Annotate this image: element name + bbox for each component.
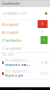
staticText: 1 bbox=[43, 38, 45, 42]
staticText: 3 bbox=[42, 22, 44, 26]
staticText: Coordinator bbox=[2, 2, 20, 5]
button[interactable]: Coordinator bbox=[0, 1, 20, 6]
staticText: Completed bbox=[2, 45, 21, 51]
staticText: Checked in bbox=[2, 37, 21, 43]
button[interactable]: Assigned bbox=[0, 20, 50, 28]
staticText: Assigned bbox=[2, 21, 18, 27]
button[interactable]: user@example.com bbox=[0, 7, 50, 20]
staticText: Your Assigned Job bbox=[5, 59, 30, 62]
staticText: 4:30 bbox=[41, 61, 48, 64]
staticText: 8:15 bbox=[41, 72, 48, 75]
staticText: user@example.com bbox=[2, 12, 26, 15]
button[interactable]: Your Assigned Job bbox=[0, 57, 50, 68]
staticText: Accepted bbox=[2, 29, 18, 35]
button[interactable]: Checked in bbox=[0, 36, 50, 44]
button[interactable]: Accepted bbox=[0, 28, 50, 36]
staticText: 0 bbox=[42, 30, 44, 34]
staticText: Your Accepted Job bbox=[5, 70, 30, 73]
staticText: Request a new job bbox=[5, 63, 30, 67]
staticText: The Jobs bbox=[2, 53, 14, 56]
button[interactable]: Completed bbox=[0, 44, 50, 52]
button[interactable]: Your Accepted Job bbox=[0, 68, 50, 79]
staticText: Reject a Job bbox=[5, 74, 23, 77]
